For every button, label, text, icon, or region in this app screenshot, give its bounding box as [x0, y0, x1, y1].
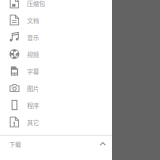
- button[interactable]: 图片: [0, 79, 112, 96]
- staticText: 视频: [27, 50, 39, 58]
- staticText: 图片: [27, 84, 39, 92]
- button[interactable]: 字幕: [0, 62, 112, 79]
- staticText: 其它: [27, 118, 39, 126]
- button[interactable]: 文档: [0, 11, 112, 28]
- staticText: 下载: [9, 139, 21, 148]
- button[interactable]: 音乐: [0, 28, 112, 45]
- staticText: 文档: [27, 16, 39, 24]
- staticText: 音乐: [27, 33, 39, 41]
- staticText: 压缩包: [27, 0, 45, 7]
- staticText: 程序: [27, 101, 39, 109]
- button[interactable]: 视频: [0, 45, 112, 62]
- button[interactable]: 程序: [0, 96, 112, 113]
- button[interactable]: 其它: [0, 113, 112, 130]
- button[interactable]: 压缩包: [0, 0, 112, 11]
- button[interactable]: 下载: [0, 136, 112, 152]
- staticText: 字幕: [27, 67, 39, 75]
